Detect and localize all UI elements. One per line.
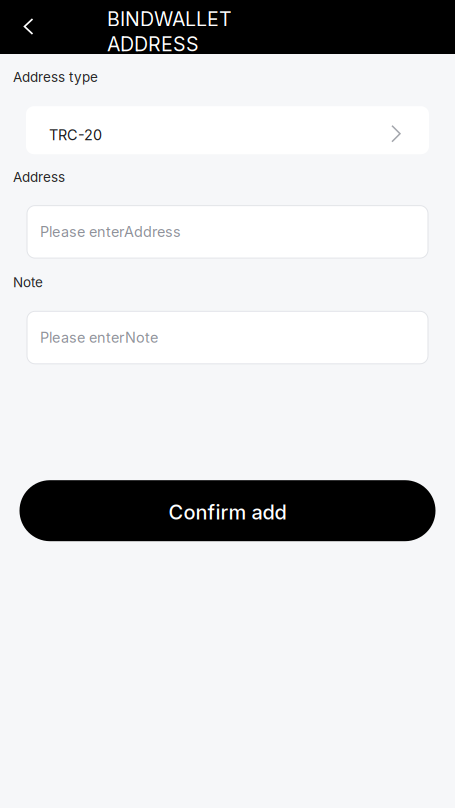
staticText: Address: [13, 169, 65, 185]
button[interactable]: Confirm add: [19, 480, 435, 541]
staticText: Note: [13, 274, 43, 290]
staticText: TRC-20: [49, 126, 102, 144]
button[interactable]: Back: [0, 0, 56, 51]
staticText: Please enterNote: [40, 329, 158, 346]
staticText: Address type: [13, 69, 98, 85]
staticText: ADDRESS: [107, 32, 199, 56]
staticText: Please enterAddress: [40, 223, 181, 240]
button[interactable]: Please enterAddress: [27, 206, 428, 258]
staticText: BINDWALLET: [107, 7, 232, 31]
button[interactable]: Please enterNote: [27, 311, 428, 364]
staticText: Confirm add: [168, 500, 286, 524]
button[interactable]: TRC-20: [26, 106, 429, 154]
